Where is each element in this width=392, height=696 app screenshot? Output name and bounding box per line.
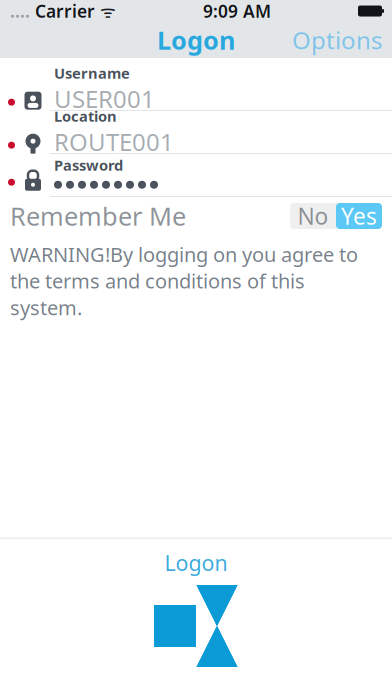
staticText: Logon	[164, 549, 227, 577]
staticText: Password	[54, 155, 123, 175]
staticText: WARNING!By logging on you agree to the t…	[10, 241, 358, 321]
staticText: USER001	[54, 83, 155, 115]
button[interactable]: Logon	[0, 539, 392, 667]
staticText: 9:09 AM	[203, 0, 271, 22]
staticText: No	[297, 201, 328, 231]
staticText: Remember Me	[10, 199, 186, 233]
staticText: Logon	[157, 23, 235, 57]
staticText: ᯤ	[95, 0, 116, 22]
staticText: ....	[10, 0, 30, 22]
staticText: Location	[54, 106, 117, 126]
staticText: ROUTE001	[54, 126, 174, 158]
staticText: Options	[292, 24, 382, 56]
staticText: Username	[54, 63, 130, 83]
staticText: Yes	[341, 201, 377, 231]
button[interactable]: Options	[282, 18, 392, 62]
staticText: Carrier	[30, 0, 95, 22]
button[interactable]: No	[290, 203, 336, 229]
button[interactable]: Yes	[336, 203, 382, 229]
